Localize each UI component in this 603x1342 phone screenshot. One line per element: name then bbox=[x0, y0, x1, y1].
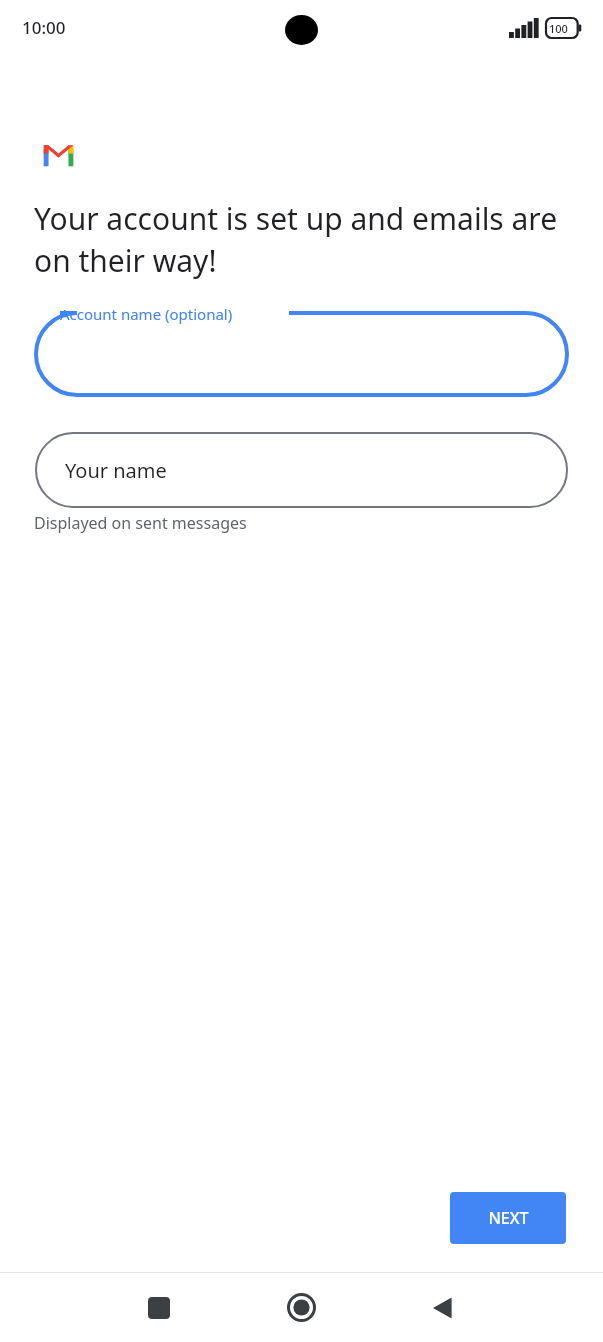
button[interactable]: Your name bbox=[36, 433, 567, 507]
staticText: Your name bbox=[65, 457, 167, 484]
button[interactable]: Recent apps bbox=[120, 1273, 198, 1342]
staticText: Displayed on sent messages bbox=[34, 512, 247, 534]
staticText: Your account is set up and emails are on… bbox=[34, 198, 579, 281]
button[interactable]: Account name (optional) bbox=[36, 303, 567, 395]
staticText: 100 bbox=[549, 21, 568, 36]
staticText: 10:00 bbox=[22, 16, 66, 39]
button[interactable]: NEXT bbox=[450, 1192, 566, 1244]
staticText: Account name (optional) bbox=[60, 304, 233, 324]
button[interactable]: Back bbox=[404, 1273, 482, 1342]
staticText: NEXT bbox=[488, 1207, 529, 1229]
button[interactable]: Home bbox=[262, 1273, 340, 1342]
